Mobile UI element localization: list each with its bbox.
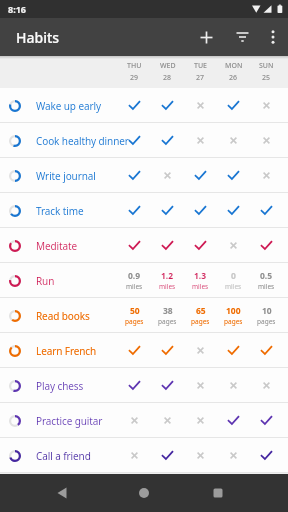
staticText: pages	[257, 317, 276, 326]
button[interactable]	[151, 88, 184, 123]
button[interactable]	[151, 158, 184, 193]
button[interactable]	[250, 228, 283, 263]
button[interactable]	[184, 438, 217, 473]
button[interactable]	[217, 123, 250, 158]
button[interactable]	[118, 193, 151, 228]
button[interactable]	[217, 438, 250, 473]
staticText: WED	[160, 61, 176, 71]
button[interactable]	[184, 333, 217, 368]
button[interactable]	[118, 333, 151, 368]
button[interactable]	[217, 228, 250, 263]
button[interactable]	[118, 403, 151, 438]
button[interactable]	[118, 123, 151, 158]
staticText: 8:16	[8, 3, 26, 15]
button[interactable]: 0.9	[118, 263, 151, 298]
button[interactable]	[250, 368, 283, 403]
button[interactable]: Call a friend	[0, 438, 288, 473]
button[interactable]	[217, 88, 250, 123]
staticText: miles	[225, 282, 242, 291]
button[interactable]	[151, 228, 184, 263]
button[interactable]	[217, 333, 250, 368]
button[interactable]	[204, 479, 232, 507]
staticText: Track time	[36, 204, 84, 218]
button[interactable]: 1.3	[184, 263, 217, 298]
button[interactable]: Wake up early	[0, 88, 288, 123]
button[interactable]	[250, 123, 283, 158]
staticText: Meditate	[36, 239, 78, 253]
staticText: miles	[159, 282, 176, 291]
button[interactable]	[250, 403, 283, 438]
button[interactable]: Cook healthy dinner	[0, 123, 288, 158]
button[interactable]: 38	[151, 298, 184, 333]
button[interactable]	[250, 88, 283, 123]
staticText: pages	[158, 317, 177, 326]
button[interactable]: 0	[217, 263, 250, 298]
button[interactable]	[118, 368, 151, 403]
button[interactable]	[151, 333, 184, 368]
button[interactable]	[250, 438, 283, 473]
button[interactable]: Write journal	[0, 158, 288, 193]
button[interactable]	[250, 193, 283, 228]
staticText: 26	[229, 73, 238, 83]
button[interactable]	[217, 403, 250, 438]
button[interactable]	[118, 438, 151, 473]
button[interactable]	[151, 403, 184, 438]
button[interactable]	[217, 368, 250, 403]
staticText: Learn French	[36, 344, 97, 358]
staticText: Play chess	[36, 379, 84, 393]
button[interactable]	[184, 123, 217, 158]
button[interactable]	[217, 193, 250, 228]
button[interactable]	[151, 193, 184, 228]
button[interactable]	[151, 123, 184, 158]
button[interactable]: 50	[118, 298, 151, 333]
button[interactable]	[184, 193, 217, 228]
button[interactable]	[184, 403, 217, 438]
button[interactable]	[250, 158, 283, 193]
staticText: 1.2	[161, 270, 174, 282]
button[interactable]	[194, 25, 218, 49]
button[interactable]: 1.2	[151, 263, 184, 298]
staticText: Write journal	[36, 169, 96, 183]
button[interactable]: Practice guitar	[0, 403, 288, 438]
button[interactable]	[217, 158, 250, 193]
button[interactable]: Read books	[0, 298, 288, 333]
staticText: 29	[130, 73, 139, 83]
button[interactable]	[130, 479, 158, 507]
button[interactable]	[230, 25, 254, 49]
button[interactable]: 10	[250, 298, 283, 333]
staticText: 0.5	[260, 270, 273, 282]
button[interactable]: 0.5	[250, 263, 283, 298]
staticText: 0.9	[128, 270, 141, 282]
button[interactable]: Play chess	[0, 368, 288, 403]
button[interactable]	[184, 88, 217, 123]
staticText: Practice guitar	[36, 414, 103, 428]
button[interactable]: Meditate	[0, 228, 288, 263]
staticText: 10	[262, 305, 272, 317]
button[interactable]	[184, 368, 217, 403]
button[interactable]	[118, 228, 151, 263]
staticText: 50	[130, 305, 140, 317]
staticText: 100	[226, 305, 241, 317]
button[interactable]	[151, 368, 184, 403]
button[interactable]: 100	[217, 298, 250, 333]
staticText: 65	[196, 305, 206, 317]
staticText: Call a friend	[36, 449, 91, 463]
staticText: Read books	[36, 309, 90, 323]
staticText: Wake up early	[36, 99, 101, 113]
button[interactable]	[184, 158, 217, 193]
button[interactable]	[118, 88, 151, 123]
button[interactable]	[184, 228, 217, 263]
button[interactable]	[262, 26, 284, 48]
button[interactable]	[250, 333, 283, 368]
button[interactable]: 65	[184, 298, 217, 333]
staticText: 28	[163, 73, 172, 83]
button[interactable]: Run	[0, 263, 288, 298]
button[interactable]	[151, 438, 184, 473]
staticText: miles	[192, 282, 209, 291]
staticText: 1.3	[194, 270, 207, 282]
button[interactable]	[48, 479, 76, 507]
button[interactable]	[118, 158, 151, 193]
button[interactable]: Track time	[0, 193, 288, 228]
button[interactable]: Learn French	[0, 333, 288, 368]
staticText: 25	[262, 73, 271, 83]
